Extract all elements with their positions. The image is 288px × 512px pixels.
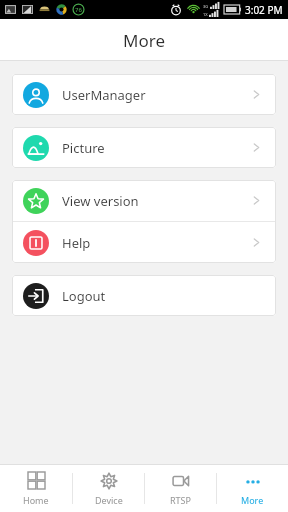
button[interactable]: RTSP — [145, 465, 216, 512]
staticText: More — [123, 29, 165, 52]
staticText: Logout — [62, 287, 106, 305]
button[interactable]: UserManager — [12, 74, 276, 115]
staticText: Home — [23, 494, 49, 506]
staticText: Help — [62, 234, 91, 252]
staticText: Picture — [62, 139, 105, 157]
staticText: 1X — [203, 12, 208, 17]
staticText: More — [241, 494, 264, 506]
button[interactable]: More — [217, 465, 288, 512]
button[interactable]: Picture — [12, 127, 276, 168]
staticText: 76 — [75, 6, 82, 14]
button[interactable]: View version — [12, 180, 276, 221]
staticText: View version — [62, 192, 139, 210]
button[interactable]: Help — [12, 222, 276, 263]
button[interactable]: Device — [73, 465, 144, 512]
staticText: UserManager — [62, 86, 146, 104]
button[interactable]: Logout — [12, 275, 276, 316]
staticText: 3:02 PM — [245, 3, 283, 17]
staticText: Device — [95, 494, 123, 506]
staticText: 3G — [203, 4, 209, 9]
button[interactable]: Home — [0, 465, 72, 512]
staticText: RTSP — [170, 494, 191, 506]
